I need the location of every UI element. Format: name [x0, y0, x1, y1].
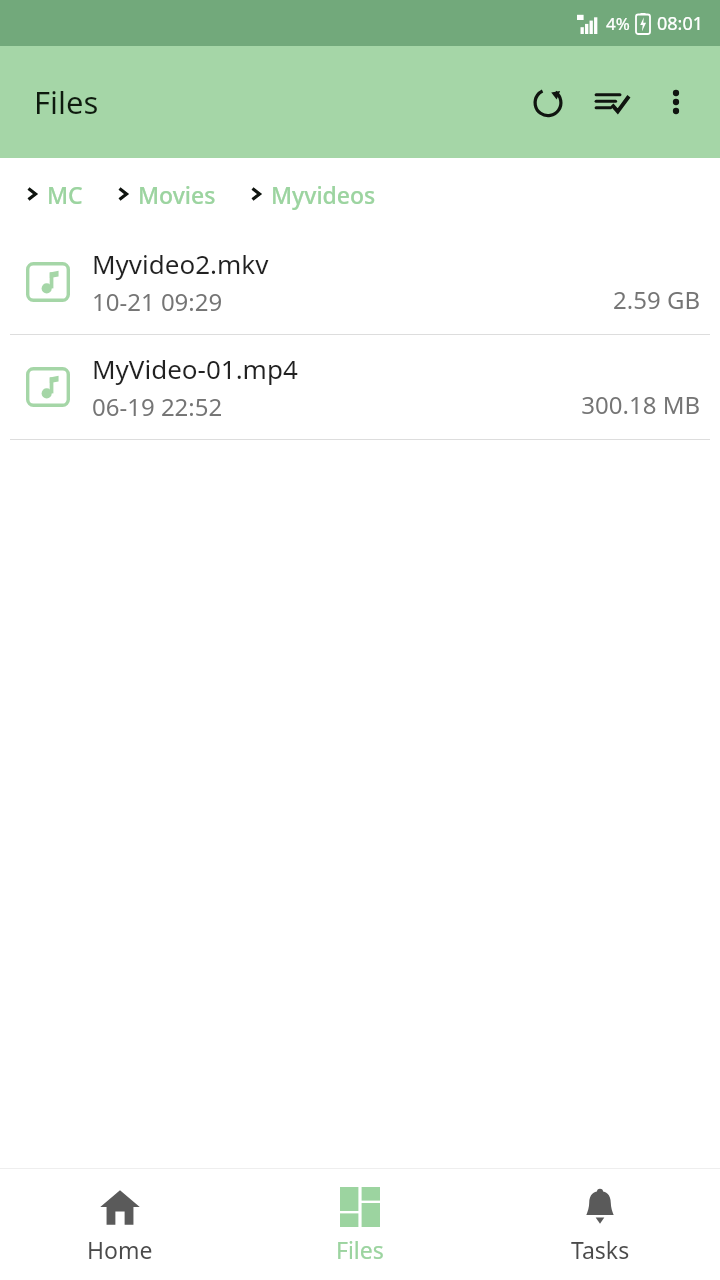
staticText: 10-21 09:29	[92, 285, 223, 318]
staticText: 4%	[606, 12, 630, 35]
staticText: MyVideo-01.mp4	[92, 351, 298, 386]
button[interactable]: Select all	[580, 70, 644, 134]
staticText: Tasks	[571, 1234, 630, 1265]
staticText: 06-19 22:52	[92, 390, 223, 423]
staticText: 300.18 MB	[581, 388, 700, 421]
button[interactable]: Movies	[101, 166, 230, 222]
button[interactable]: MyVideo-01.mp4	[0, 335, 720, 439]
staticText: Myvideos	[271, 179, 376, 210]
button[interactable]: Home	[0, 1169, 240, 1280]
staticText: 2.59 GB	[613, 283, 700, 316]
staticText: Movies	[138, 179, 216, 210]
staticText: Home	[87, 1234, 153, 1265]
button[interactable]: Myvideos	[234, 166, 390, 222]
button[interactable]: Tasks	[480, 1169, 720, 1280]
button[interactable]: Myvideo2.mkv	[0, 230, 720, 334]
button[interactable]: MC	[10, 166, 97, 222]
button[interactable]: Files	[240, 1169, 480, 1280]
staticText: Files	[34, 81, 99, 123]
staticText: Myvideo2.mkv	[92, 246, 269, 281]
staticText: MC	[47, 179, 83, 210]
button[interactable]: More options	[644, 70, 708, 134]
button[interactable]: Refresh	[516, 70, 580, 134]
staticText: Files	[336, 1234, 384, 1265]
staticText: 08:01	[657, 11, 704, 36]
